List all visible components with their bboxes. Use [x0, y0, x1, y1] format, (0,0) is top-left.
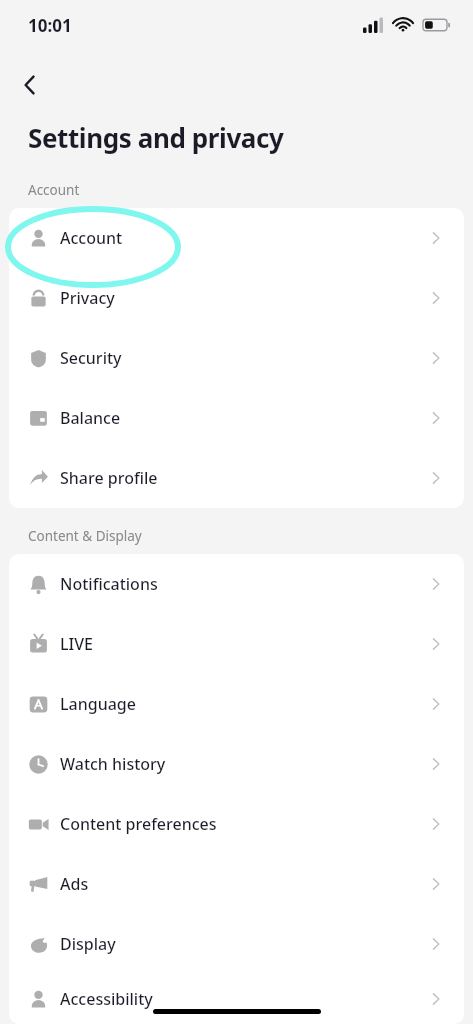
button[interactable]: Language: [9, 674, 464, 734]
staticText: Account: [60, 227, 123, 249]
button[interactable]: Watch history: [9, 734, 464, 794]
button[interactable]: Account: [9, 208, 464, 268]
staticText: Content & Display: [28, 527, 142, 545]
staticText: LIVE: [60, 633, 93, 655]
button[interactable]: Back: [8, 63, 52, 107]
button[interactable]: Ads: [9, 854, 464, 914]
staticText: Content preferences: [60, 813, 217, 835]
staticText: Privacy: [60, 287, 115, 309]
staticText: Settings and privacy: [28, 120, 284, 155]
staticText: Watch history: [60, 753, 166, 775]
button[interactable]: Privacy: [9, 268, 464, 328]
button[interactable]: Security: [9, 328, 464, 388]
staticText: Display: [60, 933, 116, 955]
button[interactable]: Notifications: [9, 554, 464, 614]
button[interactable]: Share profile: [9, 448, 464, 508]
button[interactable]: LIVE: [9, 614, 464, 674]
staticText: 10:01: [28, 14, 72, 37]
button[interactable]: Display: [9, 914, 464, 974]
button[interactable]: Balance: [9, 388, 464, 448]
staticText: Notifications: [60, 573, 158, 595]
staticText: Accessibility: [60, 988, 153, 1010]
staticText: Language: [60, 693, 136, 715]
staticText: Balance: [60, 407, 121, 429]
button[interactable]: Content preferences: [9, 794, 464, 854]
staticText: Security: [60, 347, 122, 369]
staticText: Account: [28, 181, 80, 199]
button[interactable]: Accessibility: [9, 974, 464, 1024]
staticText: Share profile: [60, 467, 158, 489]
staticText: Ads: [60, 873, 89, 895]
